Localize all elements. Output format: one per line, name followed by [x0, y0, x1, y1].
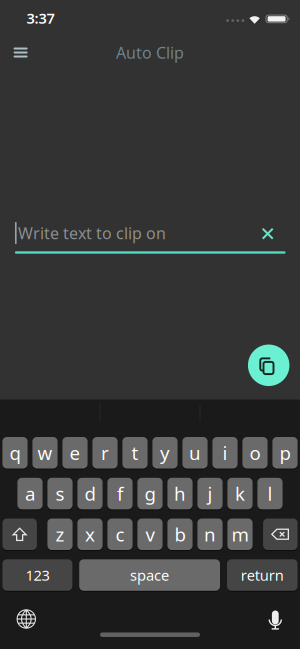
button[interactable]: Write text to clip on: [15, 213, 271, 253]
button[interactable]: 123: [2, 559, 72, 591]
staticText: q: [9, 440, 20, 465]
staticText: m: [231, 522, 248, 547]
button[interactable]: b: [167, 518, 193, 550]
staticText: n: [204, 522, 216, 547]
staticText: j: [207, 481, 212, 506]
staticText: g: [144, 481, 155, 506]
button[interactable]: w: [32, 437, 58, 468]
button[interactable]: m: [227, 518, 253, 550]
button[interactable]: a: [17, 478, 43, 509]
button[interactable]: s: [47, 478, 73, 509]
staticText: k: [235, 481, 245, 506]
button[interactable]: Delete: [263, 518, 298, 550]
button[interactable]: Shift: [2, 518, 37, 550]
staticText: Auto Clip: [116, 42, 184, 63]
button[interactable]: g: [137, 478, 163, 509]
staticText: t: [131, 440, 138, 465]
staticText: r: [101, 440, 109, 465]
staticText: f: [117, 481, 123, 506]
button[interactable]: q: [2, 437, 28, 468]
staticText: o: [249, 440, 260, 465]
button[interactable]: t: [122, 437, 148, 468]
staticText: i: [222, 440, 227, 465]
staticText: x: [85, 522, 95, 547]
button[interactable]: l: [257, 478, 283, 509]
button[interactable]: Next keyboard: [16, 609, 36, 629]
button[interactable]: d: [77, 478, 103, 509]
staticText: u: [189, 440, 201, 465]
staticText: Write text to clip on: [18, 222, 166, 244]
button[interactable]: Menu: [9, 42, 33, 62]
staticText: p: [279, 440, 290, 465]
button[interactable]: Dictate: [263, 604, 287, 630]
staticText: h: [174, 481, 186, 506]
staticText: d: [84, 481, 95, 506]
button[interactable]: r: [92, 437, 118, 468]
staticText: e: [69, 440, 80, 465]
staticText: return: [241, 565, 284, 585]
staticText: b: [174, 522, 185, 547]
button[interactable]: Clear text: [258, 224, 278, 244]
staticText: 123: [25, 565, 49, 585]
staticText: space: [130, 565, 169, 585]
button[interactable]: h: [167, 478, 193, 509]
staticText: w: [37, 440, 52, 465]
button[interactable]: j: [197, 478, 223, 509]
button[interactable]: o: [242, 437, 268, 468]
button[interactable]: return: [227, 559, 298, 591]
staticText: l: [267, 481, 272, 506]
button[interactable]: i: [212, 437, 238, 468]
staticText: s: [55, 481, 64, 506]
staticText: y: [160, 440, 170, 465]
button[interactable]: v: [137, 518, 163, 550]
button[interactable]: n: [197, 518, 223, 550]
staticText: z: [55, 522, 64, 547]
button[interactable]: Copy: [248, 345, 289, 386]
staticText: a: [25, 481, 35, 506]
button[interactable]: y: [152, 437, 178, 468]
button[interactable]: z: [47, 518, 73, 550]
button[interactable]: k: [227, 478, 253, 509]
button[interactable]: space: [79, 559, 220, 591]
button[interactable]: p: [272, 437, 298, 468]
staticText: v: [145, 522, 154, 547]
button[interactable]: f: [107, 478, 133, 509]
staticText: c: [115, 522, 124, 547]
button[interactable]: c: [107, 518, 133, 550]
button[interactable]: e: [62, 437, 88, 468]
staticText: 3:37: [26, 8, 54, 28]
button[interactable]: u: [182, 437, 208, 468]
button[interactable]: x: [77, 518, 103, 550]
